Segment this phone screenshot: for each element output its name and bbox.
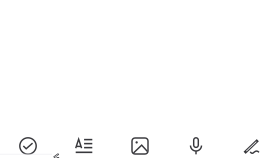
button[interactable]: Checklist: [0, 136, 56, 156]
button[interactable]: Format: [56, 136, 112, 156]
button[interactable]: Markup: [224, 136, 280, 156]
button[interactable]: Record Audio: [168, 136, 224, 156]
button[interactable]: Insert Photo or Scan: [112, 136, 168, 156]
